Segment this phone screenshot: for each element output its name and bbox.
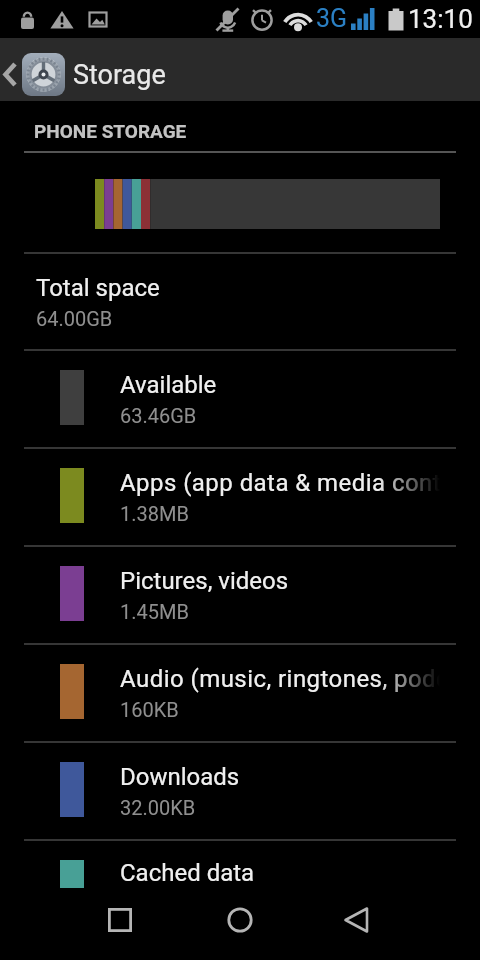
staticText: Downloads — [120, 763, 240, 791]
staticText: 1.38MB — [120, 502, 189, 525]
button[interactable]: Apps (app data & media content) — [0, 449, 480, 545]
staticText: 63.46GB — [120, 404, 197, 427]
button[interactable] — [332, 896, 380, 944]
staticText: 32.00KB — [120, 796, 196, 819]
button[interactable] — [216, 896, 264, 944]
button[interactable]: Pictures, videos — [0, 547, 480, 643]
button[interactable]: Audio (music, ringtones, podcasts, etc.) — [0, 645, 480, 741]
staticText: Cached data — [120, 859, 255, 887]
button[interactable]: Total space — [0, 254, 480, 347]
staticText: Total space — [36, 274, 160, 302]
staticText: 160KB — [120, 698, 179, 721]
button[interactable]: Downloads — [0, 743, 480, 839]
button[interactable] — [96, 896, 144, 944]
button[interactable]: Cached data — [0, 841, 480, 888]
staticText: Storage — [73, 59, 166, 91]
staticText: 13:10 — [408, 4, 473, 34]
staticText: PHONE STORAGE — [34, 120, 187, 142]
staticText: 3G — [316, 4, 348, 33]
button[interactable] — [0, 38, 72, 101]
staticText: 64.00GB — [36, 307, 113, 330]
staticText: Audio (music, ringtones, podcasts, etc.) — [120, 665, 440, 693]
staticText: 1.45MB — [120, 600, 189, 623]
staticText: Available — [120, 371, 217, 399]
button[interactable]: Available — [0, 351, 480, 447]
staticText: Apps (app data & media content) — [120, 469, 440, 497]
staticText: Pictures, videos — [120, 567, 289, 595]
